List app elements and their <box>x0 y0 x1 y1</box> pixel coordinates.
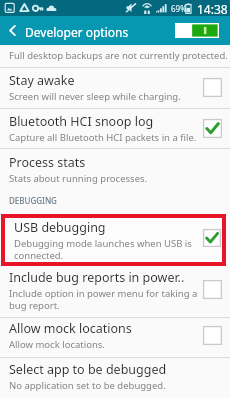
button[interactable]: USB debugging <box>203 229 221 247</box>
button[interactable]: Navigate up <box>0 16 25 45</box>
staticText: Include option in power menu for taking … <box>9 287 198 311</box>
staticText: Full desktop backups are not currently p… <box>9 49 228 62</box>
button[interactable]: Developer options on <box>175 23 219 38</box>
staticText: Process stats <box>9 154 86 171</box>
staticText: Include bug reports in power.. <box>9 269 185 286</box>
button[interactable]: Allow mock locations <box>203 326 222 345</box>
staticText: Debugging mode launches when USB is conn… <box>14 237 192 261</box>
staticText: No application set to be debugged. <box>9 379 166 392</box>
staticText: Allow mock locations. <box>9 338 105 351</box>
staticText: 14:38 <box>197 1 228 17</box>
button[interactable]: Include bug reports in power.. <box>0 264 230 315</box>
staticText: Developer options <box>25 24 129 40</box>
staticText: Capture all Bluetooth HCI packets in a f… <box>9 131 197 144</box>
button[interactable]: Stay awake <box>0 67 230 108</box>
button[interactable]: Stay awake <box>203 78 222 97</box>
button[interactable]: Bluetooth HCI snoop log <box>203 119 222 138</box>
staticText: Bluetooth HCI snoop log <box>9 113 154 130</box>
button[interactable]: Allow mock locations <box>0 315 230 356</box>
staticText: Allow mock locations <box>9 320 132 337</box>
button[interactable]: Bluetooth HCI snoop log <box>0 108 230 148</box>
staticText: 69% <box>171 3 187 14</box>
staticText: Stats about running processes. <box>9 172 148 185</box>
staticText: DEBUGGING <box>9 195 57 206</box>
button[interactable]: USB debugging <box>5 216 222 260</box>
button[interactable]: Process stats <box>0 149 230 188</box>
staticText: USB debugging <box>14 219 106 236</box>
staticText: Select app to be debugged <box>9 361 167 378</box>
button[interactable]: Include bug reports in power.. <box>203 280 222 299</box>
staticText: Screen will never sleep while charging. <box>9 90 181 103</box>
button[interactable]: Select app to be debugged <box>0 356 230 396</box>
staticText: Stay awake <box>9 72 75 89</box>
